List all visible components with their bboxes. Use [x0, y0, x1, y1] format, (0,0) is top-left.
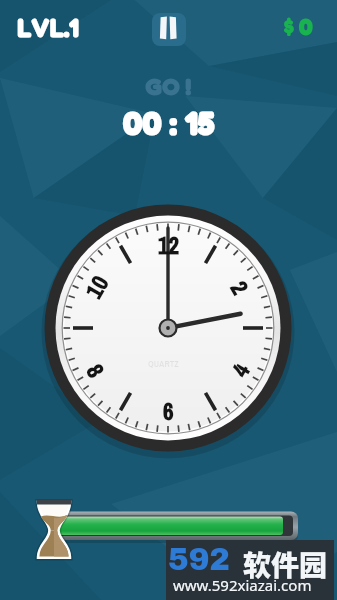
staticText: QUARTZ: [148, 358, 179, 370]
staticText: 12: [158, 230, 179, 261]
staticText: 592: [168, 543, 231, 577]
staticText: 软件园: [243, 544, 328, 585]
staticText: 2: [224, 275, 256, 300]
staticText: $: [284, 13, 294, 40]
button[interactable]: $: [284, 12, 313, 41]
staticText: www.592xiazai.com: [173, 575, 312, 595]
button[interactable]: LVL.1: [17, 13, 79, 43]
staticText: 10: [78, 270, 115, 304]
staticText: 8: [80, 358, 112, 383]
staticText: 4: [224, 357, 257, 382]
staticText: 6: [163, 396, 174, 427]
button[interactable]: Pause: [152, 13, 186, 46]
staticText: 0: [299, 12, 313, 41]
staticText: GO !: [145, 72, 192, 101]
staticText: 00 : 15: [123, 102, 215, 143]
